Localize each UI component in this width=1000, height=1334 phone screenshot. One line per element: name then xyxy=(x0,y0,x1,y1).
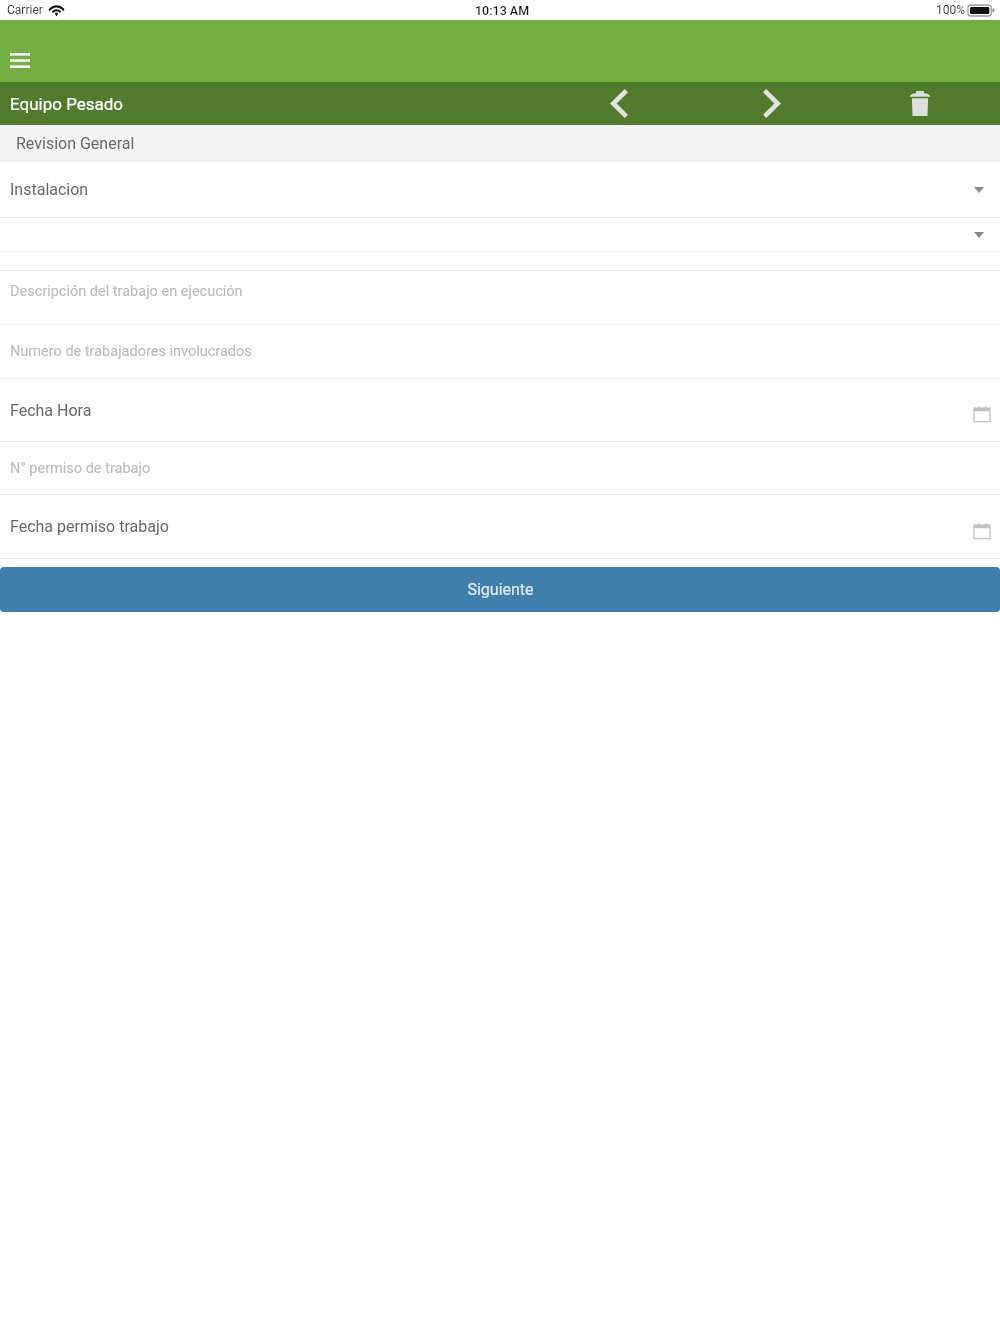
button[interactable]: Siguiente xyxy=(0,567,1000,612)
staticText: N° permiso de trabajo xyxy=(10,460,151,477)
staticText: Fecha permiso trabajo xyxy=(10,517,169,536)
button[interactable]: Numero de trabajadores involucrados xyxy=(0,325,1000,378)
button[interactable]: Menu xyxy=(2,45,38,75)
staticText: Numero de trabajadores involucrados xyxy=(10,343,252,360)
button[interactable]: Instalacion xyxy=(0,162,1000,217)
button[interactable] xyxy=(0,218,1000,251)
staticText: Siguiente xyxy=(467,580,534,599)
staticText: Fecha Hora xyxy=(10,401,92,420)
button[interactable]: Next xyxy=(753,82,790,125)
staticText: Descripción del trabajo en ejecución xyxy=(10,283,243,300)
button[interactable]: Previous xyxy=(600,82,637,125)
staticText: Revision General xyxy=(16,134,135,153)
button[interactable]: N° permiso de trabajo xyxy=(0,442,1000,494)
staticText: Equipo Pesado xyxy=(10,94,124,114)
staticText: 100% xyxy=(936,3,966,17)
staticText: Instalacion xyxy=(10,180,89,199)
button[interactable]: Fecha permiso trabajo xyxy=(0,495,1000,558)
staticText: 10:13 AM xyxy=(475,3,530,18)
staticText: Carrier xyxy=(7,3,43,17)
button[interactable]: Delete xyxy=(902,82,938,125)
button[interactable]: Descripción del trabajo en ejecución xyxy=(0,271,1000,324)
button[interactable]: Fecha Hora xyxy=(0,379,1000,441)
